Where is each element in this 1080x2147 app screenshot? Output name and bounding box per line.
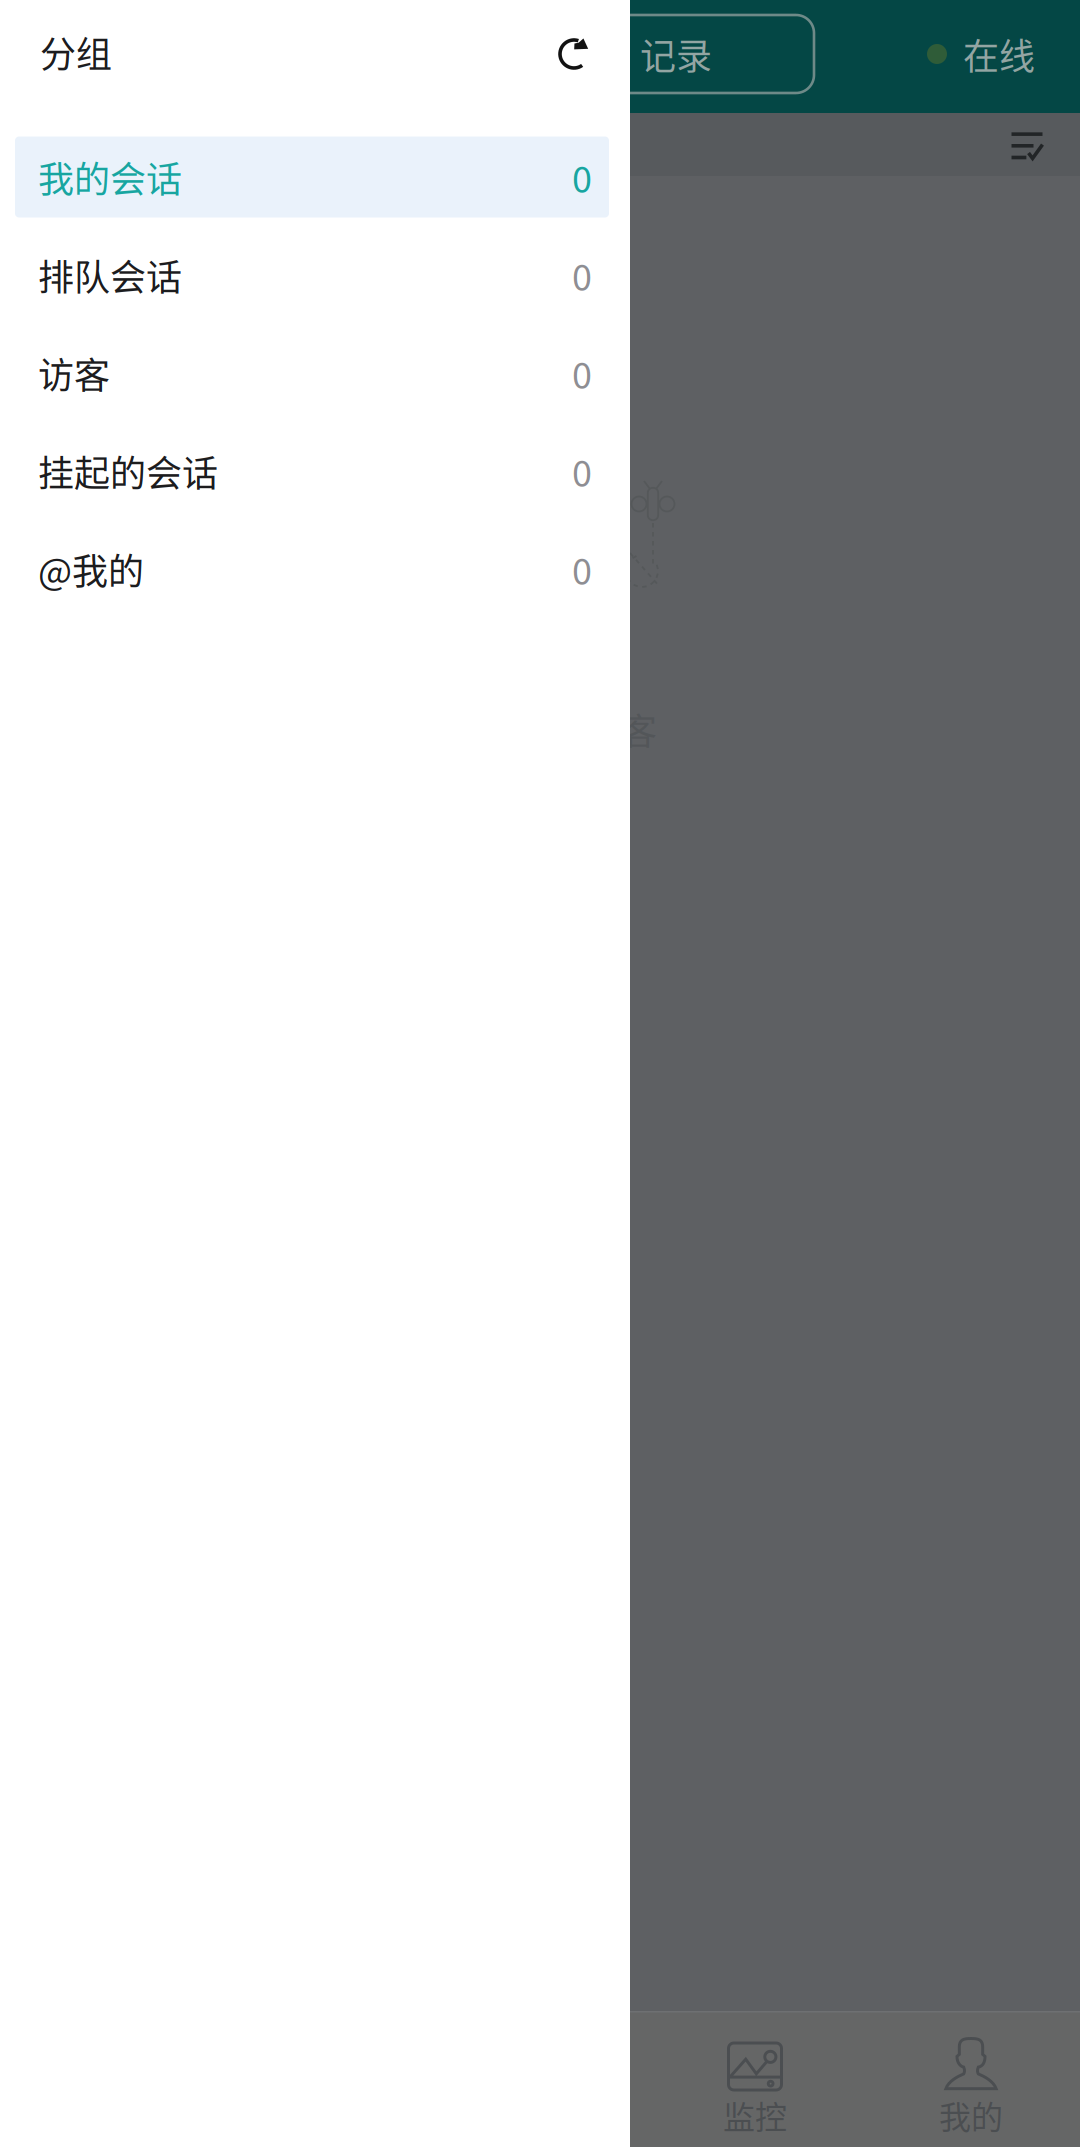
button[interactable]: @我的 — [0, 520, 645, 618]
button[interactable]: 在线 — [927, 19, 1080, 89]
button[interactable]: Filter sessions — [984, 113, 1070, 176]
button[interactable]: 排队会话 — [0, 226, 645, 324]
staticText: 0 — [572, 347, 592, 399]
staticText: 访客 — [38, 347, 110, 399]
staticText: 监控 — [723, 2092, 787, 2138]
staticText: 挂起的会话 — [38, 445, 218, 497]
button[interactable]: 挂起的会话 — [0, 422, 645, 520]
button[interactable]: Refresh — [530, 10, 618, 98]
staticText: 排队会话 — [38, 249, 182, 301]
staticText: 在线 — [963, 28, 1035, 80]
staticText: 0 — [572, 151, 592, 203]
button[interactable]: 我的 — [863, 2011, 1079, 2147]
button[interactable]: 访客 — [0, 324, 645, 422]
staticText: 0 — [572, 249, 592, 301]
button[interactable]: 监控 — [647, 2011, 863, 2147]
staticText: 我的会话 — [38, 151, 182, 203]
staticText: 0 — [572, 543, 592, 595]
staticText: 我的 — [939, 2092, 1003, 2138]
staticText: 0 — [572, 445, 592, 497]
staticText: 记录 — [640, 28, 712, 80]
button[interactable]: 我的会话 — [0, 128, 645, 226]
staticText: @我的 — [38, 543, 144, 595]
staticText: 暂无访客 — [513, 703, 657, 755]
staticText: 分组 — [40, 26, 112, 78]
button[interactable]: 记录 — [560, 15, 814, 93]
